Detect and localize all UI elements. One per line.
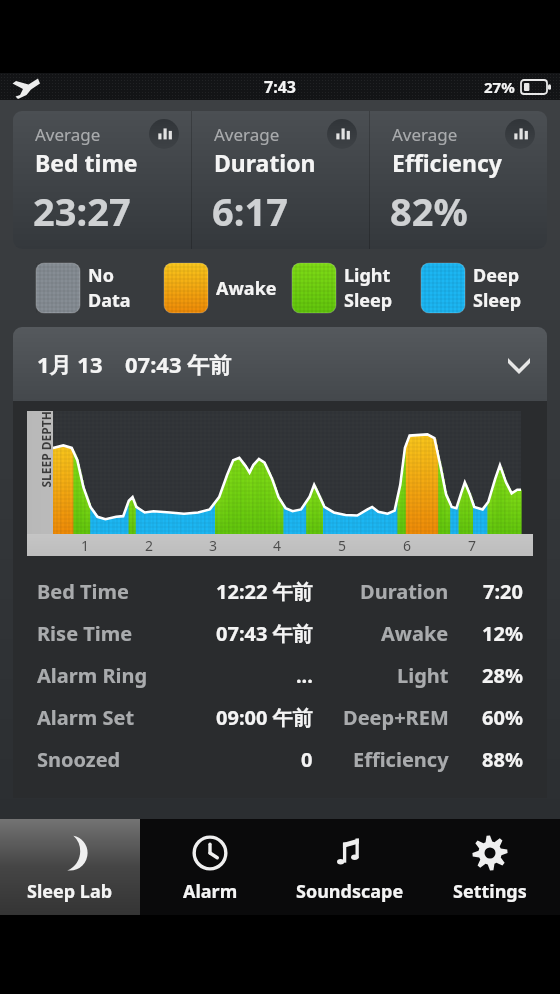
- staticText: Efficiency: [392, 147, 502, 178]
- staticText: 0: [301, 746, 313, 773]
- staticText: Awake: [381, 620, 449, 647]
- button[interactable]: Chart: [327, 119, 357, 149]
- staticText: Light: [397, 662, 449, 689]
- staticText: 1: [81, 536, 90, 555]
- staticText: Duration: [360, 578, 449, 605]
- staticText: Efficiency: [353, 746, 449, 773]
- button[interactable]: Rise Time: [37, 612, 523, 654]
- staticText: 23:27: [33, 185, 131, 237]
- button[interactable]: Deep Sleep: [421, 263, 550, 313]
- staticText: Alarm: [183, 879, 238, 904]
- staticText: 2: [145, 536, 154, 555]
- staticText: Settings: [453, 879, 527, 904]
- button[interactable]: No Data: [36, 263, 164, 313]
- staticText: Duration: [214, 147, 316, 178]
- staticText: 1月 13: [37, 349, 103, 379]
- staticText: 12:22 午前: [216, 578, 313, 605]
- staticText: 3: [209, 536, 218, 555]
- button[interactable]: Alarm Set: [37, 696, 523, 738]
- staticText: 6: [403, 536, 412, 555]
- staticText: SLEEP DEPTH: [37, 410, 53, 487]
- staticText: ...: [296, 662, 313, 689]
- staticText: Bed time: [35, 147, 138, 178]
- staticText: 60%: [463, 704, 523, 731]
- staticText: 28%: [463, 662, 523, 689]
- staticText: 7:43: [264, 76, 296, 98]
- staticText: Sleep Lab: [27, 879, 113, 904]
- staticText: Alarm Ring: [37, 662, 148, 689]
- staticText: Alarm Set: [37, 704, 135, 731]
- staticText: 7: [468, 536, 477, 555]
- staticText: 6:17: [212, 185, 288, 237]
- staticText: 27%: [484, 77, 515, 97]
- staticText: No Data: [88, 263, 131, 313]
- staticText: Bed Time: [37, 578, 130, 605]
- staticText: Rise Time: [37, 620, 133, 647]
- button[interactable]: Snoozed: [37, 738, 523, 780]
- staticText: 5: [338, 536, 347, 555]
- button[interactable]: Settings: [420, 819, 560, 915]
- staticText: Average: [392, 123, 458, 146]
- button[interactable]: Average: [13, 111, 191, 249]
- button[interactable]: Alarm Ring: [37, 654, 523, 696]
- button[interactable]: Chart: [149, 119, 179, 149]
- staticText: Snoozed: [37, 746, 121, 773]
- staticText: 4: [273, 536, 282, 555]
- staticText: 88%: [463, 746, 523, 773]
- button[interactable]: 1月 13: [13, 327, 547, 401]
- staticText: Awake: [216, 276, 277, 301]
- button[interactable]: Average: [192, 111, 369, 249]
- button[interactable]: Average: [370, 111, 547, 249]
- button[interactable]: Alarm: [140, 819, 280, 915]
- staticText: 82%: [390, 185, 468, 237]
- staticText: 7:20: [463, 578, 523, 605]
- button[interactable]: Awake: [164, 263, 292, 313]
- button[interactable]: Chart: [505, 119, 535, 149]
- other: Collapse: [499, 344, 539, 384]
- staticText: 07:43 午前: [216, 620, 313, 647]
- staticText: Deep+REM: [343, 704, 449, 731]
- button[interactable]: Sleep Lab: [0, 819, 140, 915]
- button[interactable]: Soundscape: [280, 819, 420, 915]
- staticText: 09:00 午前: [216, 704, 313, 731]
- staticText: 07:43 午前: [125, 349, 232, 379]
- staticText: Deep Sleep: [473, 263, 522, 313]
- staticText: Average: [35, 123, 101, 146]
- staticText: 12%: [463, 620, 523, 647]
- staticText: Average: [214, 123, 280, 146]
- staticText: Light Sleep: [344, 263, 393, 313]
- button[interactable]: Bed Time: [37, 570, 523, 612]
- staticText: Soundscape: [296, 879, 404, 904]
- button[interactable]: Light Sleep: [292, 263, 421, 313]
